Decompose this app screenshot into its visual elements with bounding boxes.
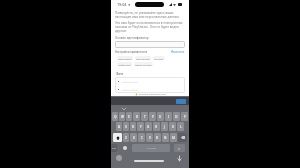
staticText: B (156, 136, 159, 140)
staticText: не знаю (154, 57, 164, 60)
staticText: O (175, 115, 178, 119)
button[interactable]: Space (132, 144, 170, 152)
button[interactable]: L (177, 122, 184, 131)
staticText: A (118, 125, 120, 129)
button[interactable]: идея имени (117, 56, 133, 60)
staticText: G (147, 125, 150, 129)
staticText: T (144, 115, 146, 119)
staticText: Пожалуйста, не указывайте здесь ваши нас… (115, 11, 185, 19)
staticText: N (164, 136, 167, 140)
button[interactable]: Hide keyboard (176, 155, 182, 161)
button[interactable] (115, 41, 185, 48)
button[interactable]: R (133, 112, 140, 121)
button[interactable]: E (126, 112, 132, 121)
staticText: Онлайн-идентификатор (115, 36, 149, 40)
staticText: M (172, 136, 175, 140)
button[interactable]: Enter (174, 144, 185, 152)
button[interactable]: не знаю (153, 56, 165, 60)
staticText: S (125, 125, 127, 129)
staticText: ↵ (178, 147, 181, 150)
staticText: C (141, 136, 143, 140)
button[interactable]: O (173, 112, 180, 121)
staticText: имена онлайн (135, 63, 152, 66)
button[interactable]: G (145, 122, 152, 131)
staticText: U (159, 115, 162, 119)
button[interactable]: C (138, 133, 145, 142)
button[interactable]: P (181, 112, 188, 121)
staticText: Настройки приватности (115, 50, 148, 54)
button[interactable]: V (146, 133, 153, 142)
button[interactable]: D (130, 122, 136, 131)
staticText: 🔒 accounts.playstation.com (135, 93, 166, 96)
button[interactable]: Symbols (111, 144, 117, 152)
button[interactable]: N (162, 133, 169, 142)
staticText: F (140, 125, 142, 129)
button[interactable]: M (170, 133, 177, 142)
button[interactable]: B (154, 133, 161, 142)
button[interactable]: Выбрать фото (115, 85, 185, 93)
staticText: E (128, 115, 130, 119)
button[interactable]: Collapse keyboard toolbar (121, 106, 126, 111)
button[interactable]: F (137, 122, 144, 131)
staticText: Это имя будет использоваться в электронн… (115, 21, 185, 33)
staticText: L (180, 125, 182, 129)
staticText: I (168, 115, 170, 119)
staticText: D (132, 125, 135, 129)
staticText: Y (152, 115, 154, 119)
button[interactable]: Backspace (178, 133, 187, 142)
button[interactable]: J (161, 122, 168, 131)
button[interactable]: любое имя (117, 62, 132, 66)
button[interactable]: K (169, 122, 176, 131)
staticText: Выбрать фото (122, 80, 139, 83)
button[interactable]: I (165, 112, 172, 121)
button[interactable]: Q (112, 112, 118, 121)
staticText: K (172, 125, 174, 129)
button[interactable]: W (119, 112, 125, 121)
button[interactable]: Send (176, 99, 186, 104)
staticText: Русский (147, 147, 156, 150)
button[interactable]: A (116, 122, 122, 131)
staticText: идея имени (118, 57, 132, 60)
staticText: 19:04 (117, 2, 127, 7)
staticText: имя онлайн (136, 57, 150, 60)
button[interactable]: H (153, 122, 160, 131)
staticText: V (149, 136, 151, 140)
button[interactable]: X (130, 133, 137, 142)
staticText: H (155, 125, 158, 129)
staticText: ?123 (112, 147, 117, 150)
button[interactable]: Y (149, 112, 156, 121)
staticText: любое имя (118, 63, 131, 66)
staticText: Выбрать фото (122, 88, 139, 91)
staticText: Z (125, 136, 127, 140)
staticText: J (164, 125, 165, 129)
button[interactable]: Выбрать фото (115, 77, 185, 85)
staticText: Фото (116, 72, 124, 76)
button[interactable]: Z (123, 133, 129, 142)
button[interactable]: имена онлайн (134, 62, 153, 66)
staticText: X (133, 136, 135, 140)
button[interactable]: S (123, 122, 129, 131)
button[interactable]: Language (116, 155, 122, 161)
staticText: W (121, 115, 124, 119)
staticText: Q (114, 115, 117, 119)
button[interactable]: Shift (113, 133, 122, 142)
button[interactable]: T (141, 112, 148, 121)
button[interactable]: Emoji (123, 146, 127, 150)
button[interactable]: имя онлайн (135, 56, 151, 60)
button[interactable]: Изменить (171, 50, 185, 54)
button[interactable]: U (157, 112, 164, 121)
staticText: P (184, 115, 186, 119)
staticText: R (136, 115, 138, 119)
